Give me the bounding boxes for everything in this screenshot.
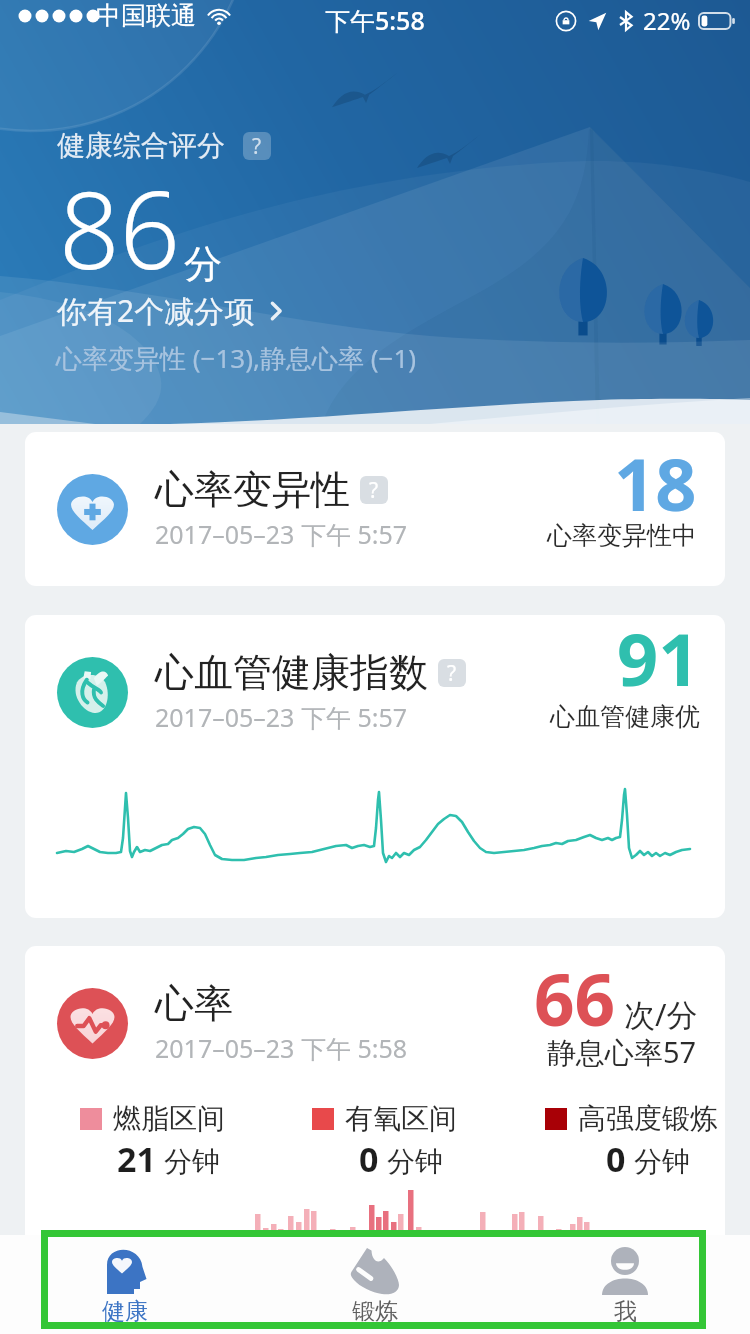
staticText: 心率变异性: [155, 465, 350, 514]
staticText: 高强度锻炼: [578, 1101, 718, 1136]
staticText: 心率变异性 (−13),静息心率 (−1): [56, 340, 417, 376]
staticText: 分钟: [634, 1144, 690, 1179]
staticText: 22%: [643, 4, 691, 37]
staticText: 健康综合评分: [57, 128, 225, 163]
staticText: 静息心率57: [547, 1032, 697, 1072]
staticText: ?: [369, 476, 379, 504]
staticText: 86: [59, 156, 181, 300]
button[interactable]: 心血管健康指数: [25, 615, 725, 918]
staticText: 66: [534, 950, 616, 1047]
staticText: 18: [614, 434, 697, 532]
staticText: 0: [606, 1136, 626, 1182]
staticText: 我: [614, 1297, 637, 1326]
staticText: 次/分: [624, 993, 698, 1035]
button[interactable]: 心率: [25, 946, 725, 1334]
staticText: 有氧区间: [345, 1101, 457, 1136]
staticText: ?: [252, 132, 262, 160]
staticText: 2017–05–23 下午 5:58: [155, 1031, 408, 1065]
staticText: 锻炼: [352, 1297, 398, 1326]
button[interactable]: 我: [500, 1235, 750, 1334]
button[interactable]: Help: [243, 132, 271, 160]
button[interactable]: 锻炼: [250, 1235, 500, 1334]
staticText: 分钟: [164, 1144, 220, 1179]
staticText: 分: [184, 240, 222, 288]
staticText: 心血管健康优: [550, 701, 700, 732]
button[interactable]: Help: [360, 476, 388, 504]
staticText: 2017–05–23 下午 5:57: [155, 517, 408, 551]
staticText: 中国联通: [96, 0, 196, 31]
button[interactable]: 健康: [0, 1235, 250, 1334]
button[interactable]: 心率变异性: [25, 432, 725, 586]
staticText: 分钟: [387, 1144, 443, 1179]
staticText: 心血管健康指数: [155, 648, 428, 697]
staticText: 21: [117, 1136, 156, 1182]
staticText: 心率变异性中: [547, 520, 697, 551]
button[interactable]: Help: [438, 659, 466, 687]
staticText: 你有2个减分项: [57, 290, 255, 331]
staticText: 心率: [155, 979, 233, 1028]
staticText: 下午5:58: [325, 3, 425, 37]
staticText: 91: [617, 615, 700, 707]
staticText: 0: [359, 1136, 379, 1182]
staticText: ?: [447, 659, 457, 687]
staticText: 健康: [102, 1297, 148, 1326]
button[interactable]: 你有2个减分项: [57, 290, 289, 331]
staticText: 燃脂区间: [113, 1101, 225, 1136]
staticText: 2017–05–23 下午 5:57: [155, 700, 408, 734]
